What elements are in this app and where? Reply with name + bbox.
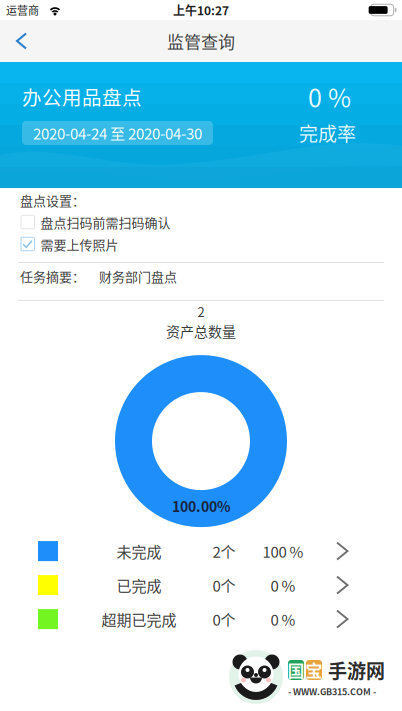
staticText: 2020-04-24 至 2020-04-30: [33, 122, 202, 144]
staticText: 运营商: [6, 2, 39, 18]
button[interactable]: Back: [0, 21, 42, 60]
staticText: 监管查询: [167, 29, 235, 53]
staticText: 0个: [212, 574, 235, 596]
staticText: 2个: [212, 540, 235, 562]
button[interactable]: 需要上传照片: [0, 233, 402, 255]
staticText: 任务摘要：: [20, 267, 85, 285]
staticText: 上午10:27: [173, 1, 229, 19]
staticText: 宝: [305, 658, 322, 682]
staticText: 2: [197, 302, 204, 321]
staticText: 盘点扫码前需扫码确认: [40, 213, 170, 231]
staticText: 0 %: [270, 574, 295, 596]
staticText: 手游网: [328, 656, 385, 684]
button[interactable]: 已完成: [0, 568, 402, 602]
button[interactable]: 盘点扫码前需扫码确认: [0, 211, 402, 233]
staticText: 国: [287, 658, 304, 682]
staticText: 财务部门盘点: [99, 267, 177, 285]
button[interactable]: 未完成: [0, 534, 402, 568]
staticText: 100.00%: [172, 496, 230, 516]
staticText: 需要上传照片: [40, 235, 118, 253]
staticText: 100 %: [262, 540, 303, 562]
staticText: 盘点设置：: [20, 191, 85, 209]
staticText: 资产总数量: [166, 321, 236, 341]
staticText: 超期已完成: [101, 608, 176, 630]
staticText: 办公用品盘点: [22, 82, 142, 111]
staticText: - WWW.GB315.COM -: [288, 685, 376, 698]
staticText: 0 %: [270, 608, 295, 630]
staticText: 完成率: [299, 119, 356, 147]
button[interactable]: 超期已完成: [0, 602, 402, 636]
staticText: 0 %: [308, 78, 351, 115]
staticText: 0个: [212, 608, 235, 630]
staticText: 已完成: [116, 574, 161, 596]
staticText: 未完成: [116, 540, 161, 562]
